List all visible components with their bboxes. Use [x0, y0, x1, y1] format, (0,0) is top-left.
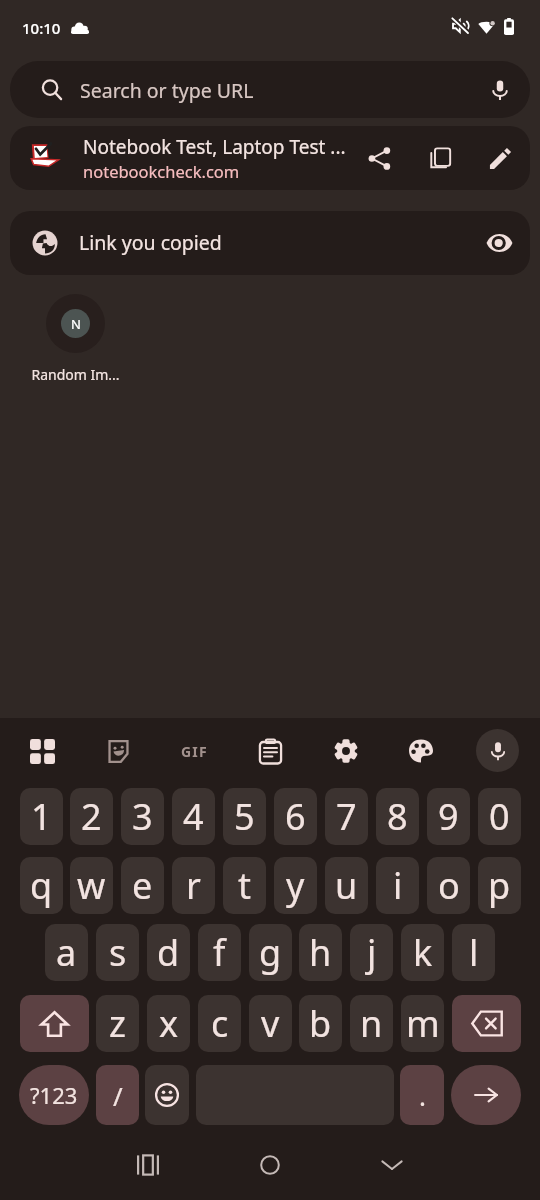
staticText: 4	[183, 792, 204, 841]
staticText: g	[259, 928, 282, 977]
staticText: .	[419, 1078, 426, 1113]
button[interactable]: GIF	[172, 729, 216, 773]
button[interactable]: 1	[20, 788, 63, 845]
staticText: 5	[234, 792, 255, 841]
button[interactable]: d	[147, 924, 190, 981]
button[interactable]: p	[478, 857, 521, 914]
staticText: Link you copied	[79, 229, 222, 256]
button[interactable]: 9	[427, 788, 470, 845]
button[interactable]: Stickers	[96, 729, 140, 773]
button[interactable]: Home	[240, 1140, 300, 1190]
staticText: a	[56, 928, 77, 977]
button[interactable]: s	[96, 924, 139, 981]
button[interactable]: Settings	[324, 729, 368, 773]
staticText: v	[261, 999, 280, 1048]
button[interactable]: q	[20, 857, 63, 914]
button[interactable]: Link you copied	[10, 211, 530, 275]
staticText: n	[360, 999, 383, 1048]
staticText: z	[109, 999, 126, 1048]
button[interactable]: Shift	[20, 995, 89, 1052]
button[interactable]: j	[350, 924, 393, 981]
staticText: Search or type URL	[80, 77, 254, 104]
button[interactable]: y	[274, 857, 317, 914]
button[interactable]: n	[350, 995, 393, 1052]
button[interactable]: g	[249, 924, 292, 981]
button[interactable]: Clipboard	[248, 729, 292, 773]
staticText: j	[367, 928, 377, 977]
staticText: Random Im...	[31, 365, 120, 384]
staticText: b	[309, 999, 332, 1048]
button[interactable]: Notebook Test, Laptop Test ...	[10, 126, 530, 190]
staticText: /	[113, 1078, 123, 1113]
staticText: p	[488, 861, 511, 910]
button[interactable]: m	[401, 995, 444, 1052]
button[interactable]: e	[121, 857, 164, 914]
staticText: t	[238, 861, 251, 910]
button[interactable]: a	[45, 924, 88, 981]
staticText: 6	[285, 792, 306, 841]
button[interactable]: z	[96, 995, 139, 1052]
staticText: f	[213, 928, 226, 977]
button[interactable]: w	[70, 857, 113, 914]
staticText: l	[469, 928, 479, 977]
button[interactable]: Enter	[451, 1065, 521, 1125]
button[interactable]: 5	[223, 788, 266, 845]
staticText: 2	[81, 792, 102, 841]
staticText: k	[413, 928, 433, 977]
button[interactable]: /	[96, 1065, 139, 1125]
staticText: o	[438, 861, 460, 910]
button[interactable]: 7	[325, 788, 368, 845]
button[interactable]: r	[172, 857, 215, 914]
button[interactable]: f	[198, 924, 241, 981]
staticText: 9	[438, 792, 459, 841]
button[interactable]: Backspace	[452, 995, 521, 1052]
button[interactable]: Hide keyboard	[362, 1140, 422, 1190]
button[interactable]: b	[299, 995, 342, 1052]
staticText: notebookcheck.com	[83, 160, 240, 182]
staticText: 8	[387, 792, 408, 841]
button[interactable]: ?123	[19, 1065, 89, 1125]
button[interactable]: o	[427, 857, 470, 914]
button[interactable]: 2	[70, 788, 113, 845]
button[interactable]: u	[325, 857, 368, 914]
button[interactable]: Apps	[20, 729, 64, 773]
button[interactable]: Themes	[399, 729, 443, 773]
button[interactable]: Recents	[118, 1140, 178, 1190]
button[interactable]: l	[452, 924, 495, 981]
button[interactable]: h	[299, 924, 342, 981]
staticText: Notebook Test, Laptop Test ...	[83, 134, 346, 160]
staticText: 1	[31, 792, 52, 841]
button[interactable]: N	[28, 294, 122, 384]
staticText: 7	[336, 792, 357, 841]
button[interactable]: i	[376, 857, 419, 914]
staticText: m	[406, 999, 440, 1048]
staticText: c	[211, 999, 229, 1048]
button[interactable]: x	[147, 995, 190, 1052]
staticText: 10:10	[22, 18, 61, 38]
button[interactable]: Emoji	[145, 1065, 189, 1125]
button[interactable]: t	[223, 857, 266, 914]
button[interactable]: 0	[478, 788, 521, 845]
button[interactable]: v	[249, 995, 292, 1052]
button[interactable]: 6	[274, 788, 317, 845]
staticText: u	[335, 861, 358, 910]
staticText: i	[393, 861, 403, 910]
button[interactable]: k	[401, 924, 444, 981]
staticText: e	[132, 861, 153, 910]
button[interactable]: 8	[376, 788, 419, 845]
staticText: ?123	[30, 1080, 78, 1110]
button[interactable]: .	[400, 1065, 444, 1125]
button[interactable]: 4	[172, 788, 215, 845]
button[interactable]: c	[198, 995, 241, 1052]
staticText: y	[286, 861, 305, 910]
staticText: w	[77, 861, 106, 910]
staticText: h	[309, 928, 332, 977]
staticText: r	[186, 861, 201, 910]
button[interactable]: 3	[121, 788, 164, 845]
staticText: 3	[132, 792, 153, 841]
button[interactable]: Search or type URL	[10, 61, 530, 118]
staticText: q	[30, 861, 53, 910]
button[interactable]: Voice input	[476, 729, 519, 772]
staticText: GIF	[181, 742, 208, 761]
